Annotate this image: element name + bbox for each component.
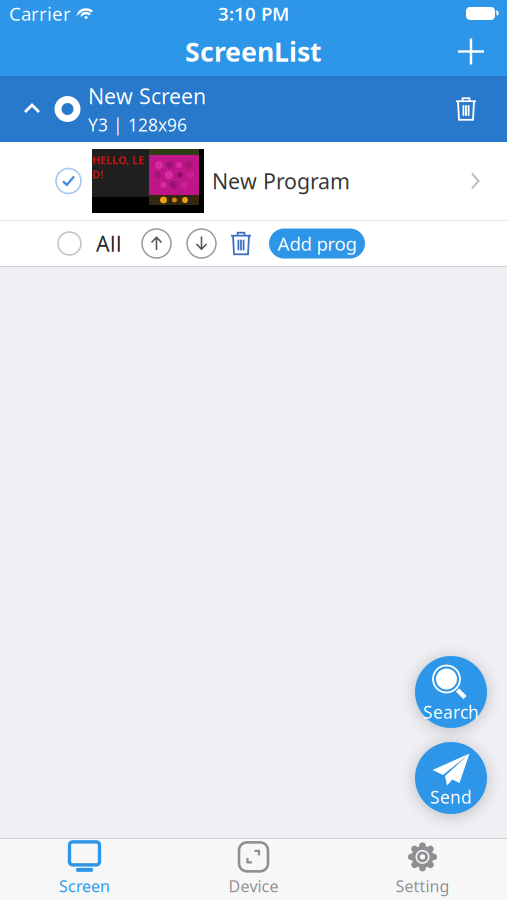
staticText: HELLO, LE — [92, 153, 144, 167]
button[interactable]: Move up — [122, 229, 171, 258]
staticText: New Screen — [88, 82, 206, 110]
button[interactable]: Send — [415, 742, 487, 814]
button[interactable]: Delete programs — [216, 232, 251, 255]
staticText: Add prog — [277, 231, 356, 256]
button[interactable]: Move down — [171, 229, 216, 258]
staticText: All — [96, 229, 122, 258]
button[interactable]: Delete screen — [456, 97, 507, 121]
staticText: Search — [423, 700, 479, 723]
staticText: Device — [228, 875, 278, 897]
button[interactable]: Select all — [0, 232, 81, 255]
button[interactable]: Add screen — [458, 38, 507, 64]
staticText: Send — [430, 785, 472, 808]
button[interactable]: Search — [415, 656, 487, 728]
staticText: 3:10 PM — [218, 1, 289, 26]
button[interactable]: Device — [169, 839, 338, 899]
button[interactable]: Setting — [338, 839, 507, 899]
staticText: D! — [92, 167, 103, 181]
staticText: Carrier — [9, 1, 71, 26]
staticText: Y3 | 128x96 — [88, 113, 187, 136]
button[interactable]: Add prog — [251, 228, 365, 258]
staticText: ScreenList — [185, 34, 322, 69]
staticText: Screen — [59, 875, 110, 897]
button[interactable]: Select program — [0, 168, 81, 193]
button[interactable]: New Screen — [0, 76, 507, 142]
button[interactable]: Screen — [0, 839, 169, 899]
staticText: New Program — [212, 167, 350, 195]
staticText: Setting — [395, 875, 449, 897]
button[interactable]: HELLO, LE — [0, 142, 507, 220]
